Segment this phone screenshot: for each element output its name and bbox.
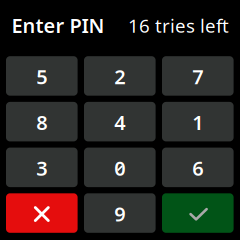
staticText: 7 bbox=[192, 63, 203, 90]
button[interactable]: 5 bbox=[6, 56, 78, 96]
staticText: 16 tries left bbox=[128, 13, 229, 38]
staticText: Enter PIN bbox=[11, 12, 104, 39]
button[interactable]: 6 bbox=[162, 148, 234, 187]
button[interactable]: 7 bbox=[162, 56, 234, 96]
button[interactable]: 2 bbox=[84, 56, 156, 96]
button[interactable]: 0 bbox=[84, 148, 156, 187]
staticText: 3 bbox=[36, 155, 47, 181]
button[interactable]: 9 bbox=[84, 193, 156, 233]
staticText: 1 bbox=[192, 109, 203, 136]
button[interactable]: Cancel bbox=[6, 193, 78, 233]
staticText: 8 bbox=[36, 109, 47, 136]
button[interactable]: 3 bbox=[6, 148, 78, 187]
button[interactable]: Confirm bbox=[162, 193, 234, 233]
staticText: 4 bbox=[114, 109, 125, 136]
button[interactable]: 1 bbox=[162, 102, 234, 141]
staticText: 0 bbox=[114, 155, 125, 181]
staticText: 9 bbox=[114, 200, 125, 227]
button[interactable]: 8 bbox=[6, 102, 78, 141]
staticText: 5 bbox=[36, 63, 47, 90]
staticText: 2 bbox=[114, 63, 125, 90]
button[interactable]: 4 bbox=[84, 102, 156, 141]
staticText: 6 bbox=[192, 155, 203, 181]
